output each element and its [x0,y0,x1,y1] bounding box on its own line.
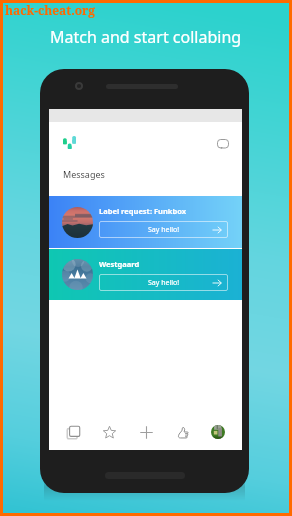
button[interactable]: Westgaard [49,249,242,300]
button[interactable]: Favorites [97,420,121,444]
staticText: Messages [63,168,105,180]
button[interactable]: Label request: Funkbox [49,196,242,248]
staticText: Westgaard [99,259,140,269]
button[interactable]: Say hello! [99,221,228,238]
button[interactable]: Cards [61,420,85,444]
button[interactable]: Add [134,420,158,444]
staticText: Label request: Funkbox [99,206,187,216]
staticText: Match and start collabing [50,26,242,48]
staticText: Say hello! [148,225,180,235]
button[interactable]: Messages [213,134,232,153]
staticText: hack-cheat.org [5,2,96,18]
button[interactable]: Profile [206,420,230,444]
button[interactable]: Likes [170,420,194,444]
button[interactable]: Say hello! [99,274,228,291]
staticText: Say hello! [148,278,180,288]
